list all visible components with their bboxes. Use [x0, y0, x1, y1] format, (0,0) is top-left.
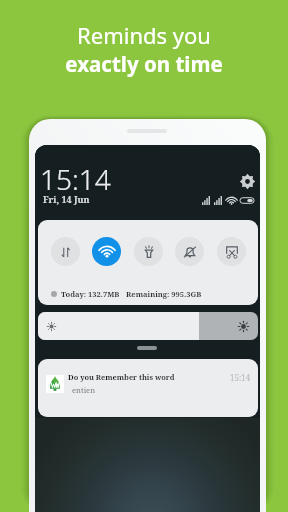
- button[interactable]: Quick setting: [92, 237, 121, 266]
- staticText: 15:14: [230, 372, 251, 383]
- button[interactable]: Quick setting: [51, 237, 80, 266]
- staticText: Do you Remember this word: [68, 372, 175, 382]
- staticText: Today: 132.7MB: [61, 289, 120, 299]
- button[interactable]: [38, 312, 258, 340]
- button[interactable]: Quick setting: [217, 237, 246, 266]
- button[interactable]: Settings: [239, 173, 256, 190]
- button[interactable]: Do you Remember this word: [38, 359, 258, 417]
- staticText: Remaining: 995.3GB: [126, 289, 202, 299]
- button[interactable]: Quick setting: [175, 237, 204, 266]
- staticText: Reminds you: [77, 20, 211, 50]
- button[interactable]: Quick setting: [134, 237, 163, 266]
- staticText: Fri, 14 Jun: [43, 193, 90, 205]
- staticText: exactly on time: [65, 50, 223, 78]
- staticText: entien: [72, 385, 96, 395]
- staticText: 15:14: [40, 160, 111, 198]
